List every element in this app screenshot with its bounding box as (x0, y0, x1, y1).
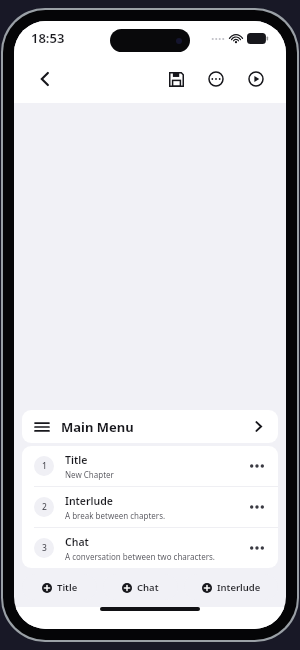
button[interactable]: Chat (103, 574, 178, 600)
staticText: Chat (65, 535, 89, 549)
staticText: Title (57, 581, 78, 594)
staticText: Main Menu (61, 418, 134, 436)
button[interactable]: More options (202, 65, 230, 93)
staticText: 18:53 (31, 29, 65, 47)
staticText: Interlude (217, 581, 261, 594)
staticText: 2 (42, 501, 47, 513)
button[interactable]: More options for Title (246, 453, 268, 479)
staticText: 3 (42, 542, 47, 554)
button[interactable]: Back (30, 64, 60, 94)
staticText: 1 (42, 460, 47, 472)
button[interactable]: More options for Interlude (246, 494, 268, 520)
button[interactable]: 1 (22, 446, 278, 486)
staticText: Chat (137, 581, 159, 594)
button[interactable]: Main Menu (22, 410, 278, 443)
button[interactable]: Interlude (184, 574, 278, 600)
button[interactable]: 2 (22, 487, 278, 527)
staticText: Title (65, 453, 88, 467)
button[interactable]: Title (22, 574, 97, 600)
staticText: A break between chapters. (65, 510, 166, 521)
staticText: Interlude (65, 494, 113, 508)
button[interactable]: 3 (22, 528, 278, 568)
button[interactable]: Save (162, 65, 190, 93)
staticText: A conversation between two characters. (65, 551, 216, 562)
staticText: New Chapter (65, 469, 114, 480)
button[interactable]: More options for Chat (246, 535, 268, 561)
button[interactable]: Play (242, 65, 270, 93)
